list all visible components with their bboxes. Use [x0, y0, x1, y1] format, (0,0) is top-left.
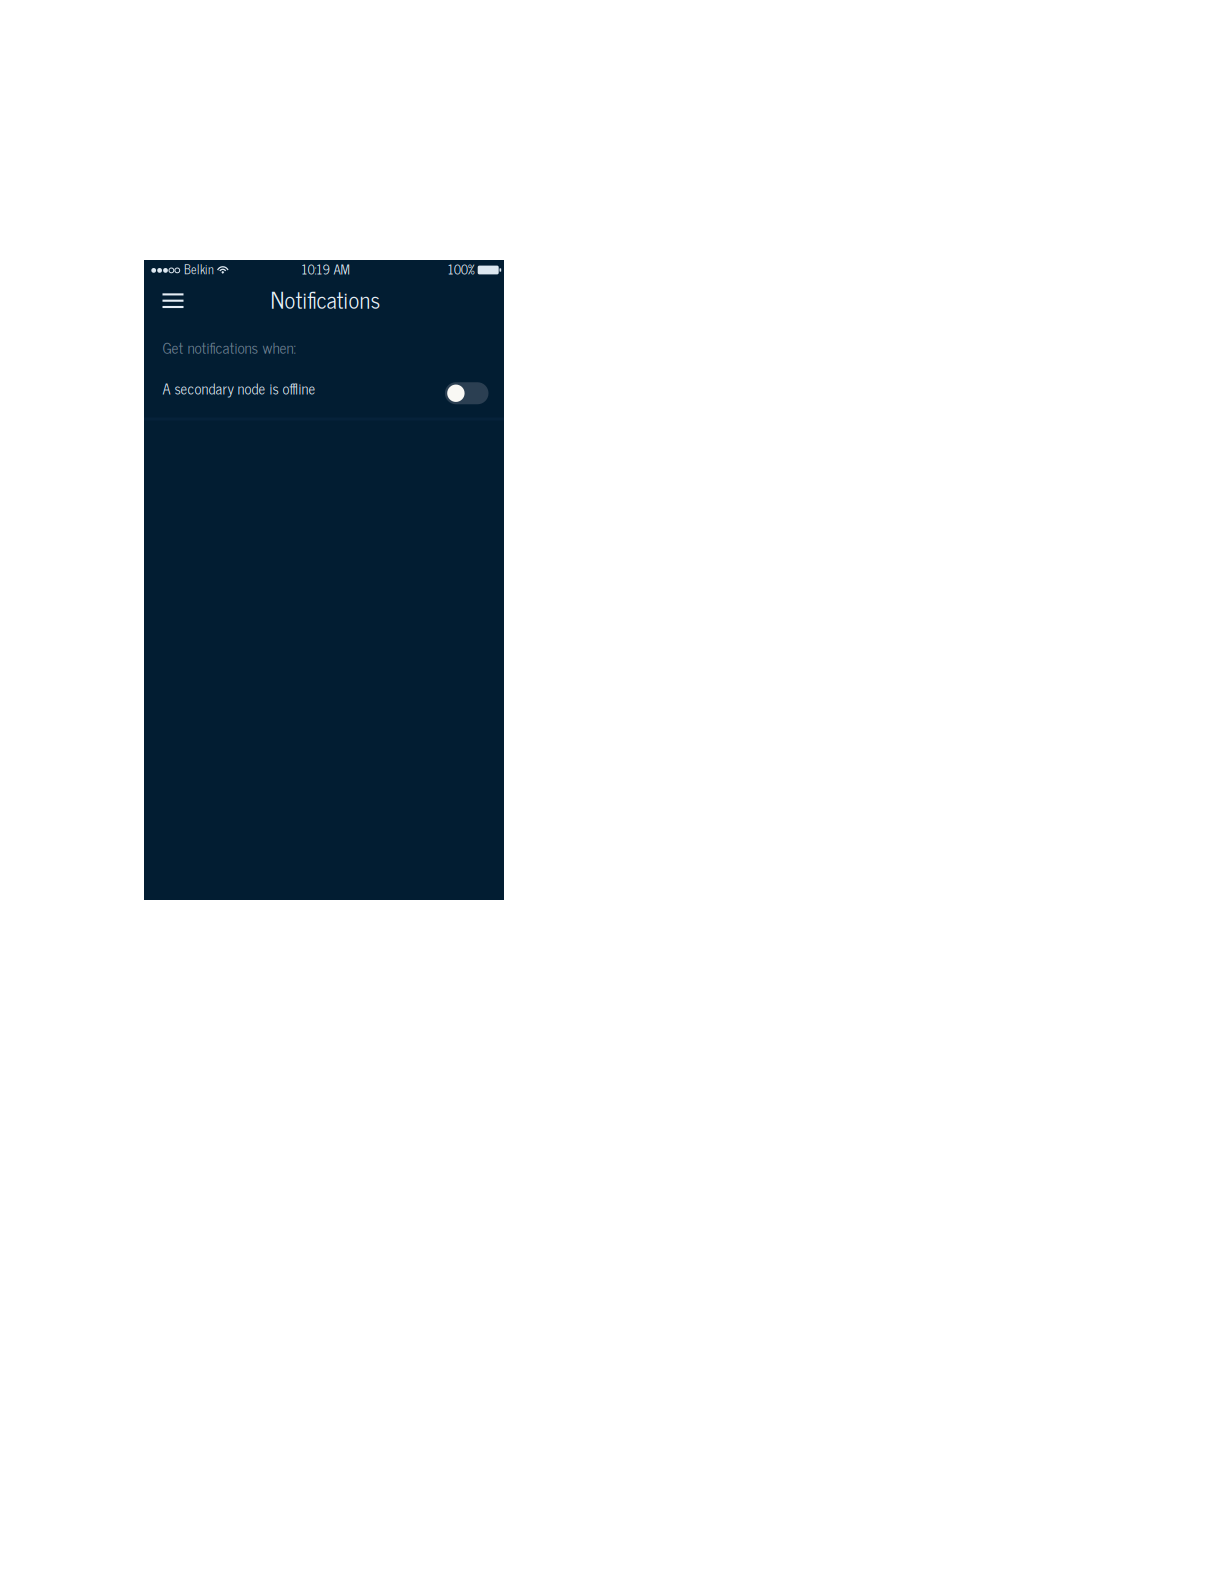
staticText: A secondary node is offline [162, 376, 315, 400]
button[interactable]: Menu [144, 282, 202, 320]
staticText: Get notifications when: [162, 334, 296, 360]
staticText: 10:19 AM [301, 258, 349, 280]
staticText: Notifications [270, 280, 380, 318]
button[interactable]: A secondary node is offline [144, 369, 504, 417]
staticText: Belkin [184, 259, 214, 279]
staticText: 100% [448, 258, 475, 280]
